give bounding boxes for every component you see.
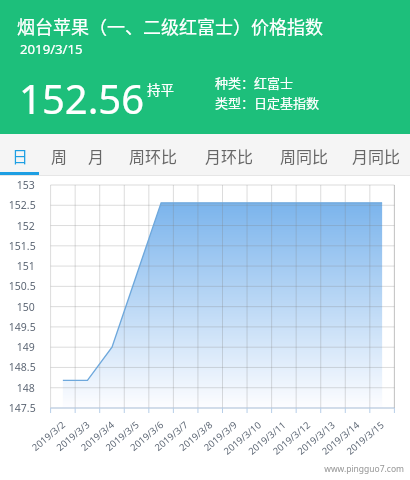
staticText: 月 xyxy=(88,144,105,167)
button[interactable]: 周同比 xyxy=(280,134,329,176)
staticText: 烟台苹果（一、二级红富士）价格指数 xyxy=(17,13,323,39)
button[interactable]: 月同比 xyxy=(352,134,401,176)
button[interactable]: 月 xyxy=(88,134,105,176)
button[interactable]: 周 xyxy=(51,134,68,176)
staticText: 种类：红富士 xyxy=(215,73,294,92)
staticText: 2019/3/15 xyxy=(20,40,83,58)
staticText: 月环比 xyxy=(205,144,254,167)
button[interactable]: 日 xyxy=(12,134,29,176)
staticText: 持平 xyxy=(147,79,174,99)
staticText: 日 xyxy=(12,144,29,167)
staticText: 周同比 xyxy=(280,144,329,167)
button[interactable]: 月环比 xyxy=(205,134,254,176)
staticText: 152.56 xyxy=(19,71,145,125)
staticText: 周环比 xyxy=(129,144,178,167)
staticText: 月同比 xyxy=(352,144,401,167)
staticText: 周 xyxy=(51,144,68,167)
button[interactable]: 周环比 xyxy=(129,134,178,176)
staticText: 类型：日定基指数 xyxy=(215,93,320,112)
